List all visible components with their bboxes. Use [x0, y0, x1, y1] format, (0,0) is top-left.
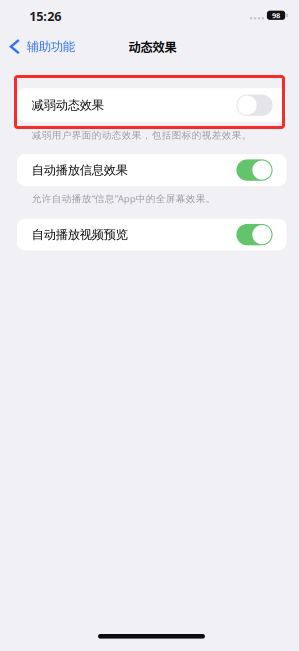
staticText: 15:26	[29, 7, 61, 25]
button[interactable]: 辅助功能	[0, 34, 83, 58]
staticText: 自动播放视频预览	[32, 227, 128, 242]
staticText: 自动播放信息效果	[32, 162, 128, 178]
staticText: 减弱用户界面的动态效果，包括图标的视差效果。	[32, 129, 252, 141]
button[interactable]: 自动播放视频预览	[17, 219, 287, 250]
staticText: 减弱动态效果	[32, 97, 104, 113]
staticText: 允许自动播放“信息”App中的全屏幕效果。	[32, 192, 216, 205]
staticText: 辅助功能	[27, 39, 75, 54]
staticText: 动态效果	[128, 38, 176, 56]
button[interactable]: 自动播放信息效果	[17, 154, 287, 186]
staticText: 98	[272, 10, 280, 20]
button[interactable]: 减弱动态效果	[17, 88, 287, 122]
